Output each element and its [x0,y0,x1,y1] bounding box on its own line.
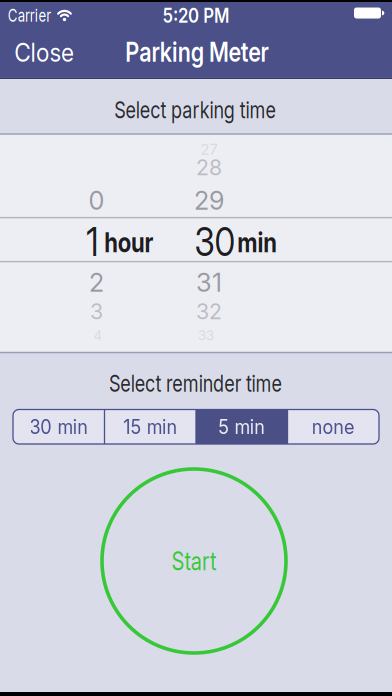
staticText: 5:20 PM [156,4,235,27]
staticText: 15 min [120,415,180,439]
staticText: 30 [190,218,239,265]
staticText: 4 [93,328,102,343]
staticText: min [233,227,280,258]
staticText: 27 [200,141,217,158]
staticText: 30 min [26,415,91,439]
button[interactable]: 30 min [13,409,104,444]
staticText: Close [11,38,77,67]
staticText: Carrier [0,4,60,26]
staticText: Select reminder time [87,370,303,397]
staticText: 32 [196,299,222,324]
button[interactable]: Start [101,468,287,654]
staticText: Parking Meter [109,36,284,68]
staticText: 33 [198,328,214,343]
staticText: 2 [89,268,104,297]
staticText: 5 min [216,415,268,439]
button[interactable]: 5 min [196,409,287,444]
staticText: Start [166,546,222,576]
staticText: 1 [85,218,100,265]
staticText: 3 [90,299,103,324]
staticText: 28 [196,155,222,180]
button[interactable]: Close [0,28,88,76]
button[interactable]: none [287,409,379,444]
staticText: 29 [194,186,224,215]
staticText: 31 [196,268,222,297]
staticText: none [309,415,357,439]
button[interactable]: 15 min [104,409,196,444]
staticText: 0 [88,186,104,215]
staticText: Select parking time [94,97,296,123]
staticText: hour [99,227,158,258]
